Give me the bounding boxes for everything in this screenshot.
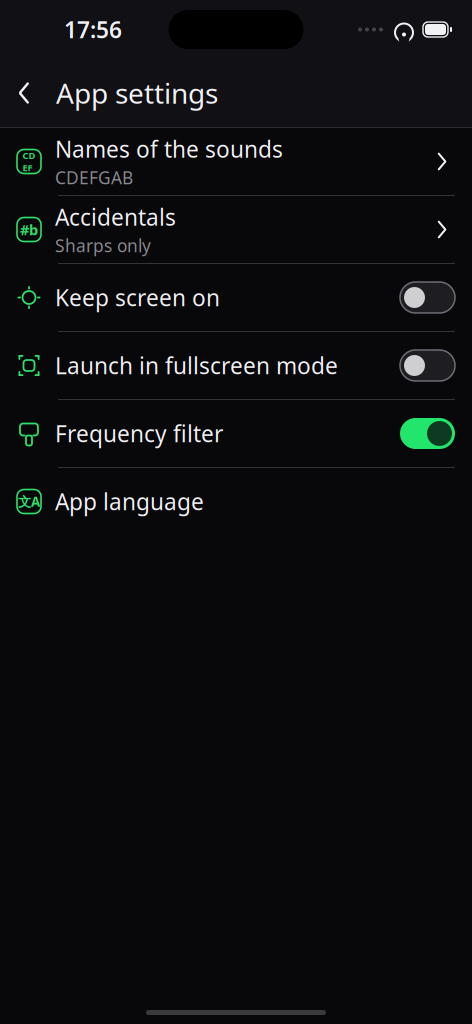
button[interactable]: Keep screen on bbox=[0, 264, 472, 331]
staticText: CD EF bbox=[22, 149, 35, 174]
staticText: Launch in fullscreen mode bbox=[55, 350, 338, 380]
button[interactable]: Frequency filter bbox=[0, 400, 472, 467]
staticText: 17:56 bbox=[64, 14, 122, 44]
button[interactable]: Back bbox=[0, 71, 48, 115]
button[interactable]: Launch in fullscreen mode bbox=[0, 332, 472, 399]
staticText: Frequency filter bbox=[55, 418, 223, 448]
button[interactable]: CD EF bbox=[0, 128, 472, 195]
staticText: Keep screen on bbox=[55, 282, 220, 312]
button[interactable]: #b bbox=[0, 196, 472, 263]
staticText: Names of the sounds bbox=[55, 134, 283, 164]
button[interactable]: 文A bbox=[0, 468, 472, 535]
staticText: App language bbox=[55, 486, 204, 516]
staticText: Accidentals bbox=[55, 202, 176, 232]
staticText: App settings bbox=[56, 74, 218, 112]
staticText: 文A bbox=[18, 493, 40, 510]
staticText: CDEFGAB bbox=[55, 166, 133, 189]
staticText: Sharps only bbox=[55, 234, 151, 257]
staticText: #b bbox=[20, 220, 38, 239]
